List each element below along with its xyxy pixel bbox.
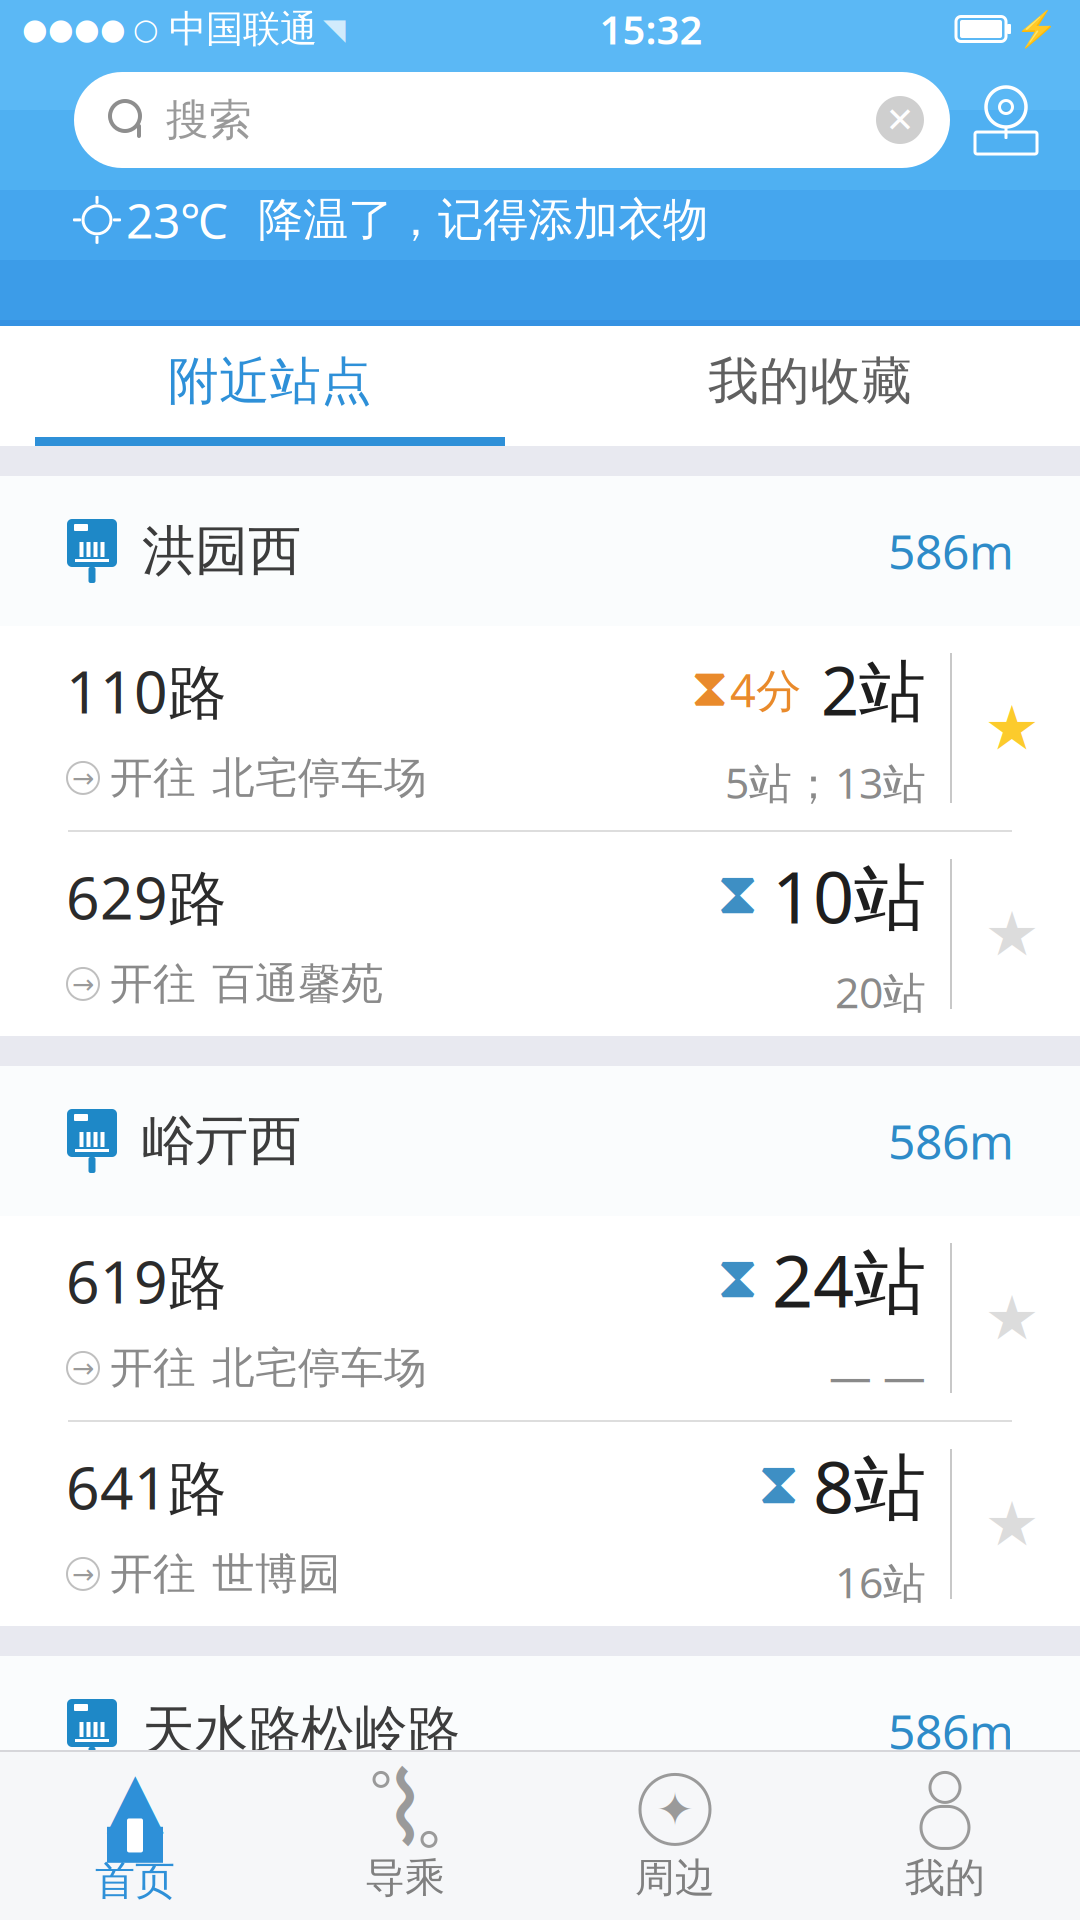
staticText: 附近站点 [168,350,372,413]
staticText: 百通馨苑 [212,958,384,1010]
staticText: ▲ [106,1756,163,1841]
staticText: 641路 [66,1448,227,1526]
staticText: 619路 [66,1242,227,1320]
staticText: ○ [133,12,159,46]
staticText: ✦ [656,1784,694,1835]
staticText: 天水路松岭路 [142,1698,460,1764]
staticText: 586m [888,1699,1014,1763]
staticText: 降温了，记得添加衣物 [258,192,708,248]
staticText: 开往 [110,1548,196,1600]
staticText: ◥ [323,12,346,46]
staticText: 110路 [66,652,227,730]
staticText: 洪园西 [142,518,301,584]
button[interactable]: 定位 [950,72,1062,168]
button[interactable]: 峪亓西 [0,1066,1080,1216]
staticText: ⧗ [691,664,728,716]
button[interactable]: 629路 [0,832,1080,1036]
staticText: ★ [984,1489,1039,1559]
staticText: ★ [984,693,1039,763]
staticText: → [72,763,94,793]
staticText: 我的 [905,1853,985,1902]
button[interactable]: 641路 [0,1422,1080,1626]
staticText: → [72,1559,94,1589]
button[interactable]: 我的 [810,1752,1080,1920]
button[interactable]: ✦ [540,1752,810,1920]
button[interactable]: 搜索 [74,72,950,168]
staticText: ⧗ [758,1457,799,1514]
staticText: ⚡ [1015,9,1058,49]
staticText: 4分 [730,660,801,720]
staticText: 2站 [821,645,926,734]
button[interactable]: ▲ [0,1752,270,1920]
staticText: ✕ [885,100,914,140]
button[interactable]: ⌇ [270,1752,540,1920]
staticText: 15:32 [599,2,702,55]
button[interactable]: 619路 [0,1216,1080,1420]
staticText: 首页 [95,1856,175,1905]
staticText: 峪亓西 [142,1108,301,1174]
staticText: → [72,969,94,999]
button[interactable]: 附近站点 [0,326,540,446]
button[interactable]: 110路 [0,626,1080,830]
staticText: — — [829,1347,926,1404]
button[interactable]: 我的收藏 [540,326,1080,446]
staticText: ★ [984,899,1039,969]
staticText: 10站 [772,848,926,943]
staticText: 周边 [635,1853,715,1902]
staticText: 世博园 [212,1548,341,1600]
staticText: 5站；13站 [725,754,926,811]
staticText: 8站 [813,1438,926,1533]
staticText: ⧗ [717,867,758,924]
button[interactable]: 洪园西 [0,476,1080,626]
staticText: 北宅停车场 [212,752,427,804]
staticText: 中国联通 [169,6,317,52]
staticText: 23℃ [126,188,228,252]
staticText: 开往 [110,1342,196,1394]
staticText: ★ [984,1283,1039,1353]
staticText: 开往 [110,752,196,804]
button[interactable]: 天水路松岭路 [0,1656,1080,1806]
staticText: ●●●● [22,12,126,46]
staticText: ⧗ [717,1251,758,1308]
staticText: ⌇ [381,1753,429,1865]
staticText: → [72,1353,94,1383]
staticText: 16站 [835,1553,926,1610]
staticText: 开往 [110,958,196,1010]
staticText: 我的收藏 [708,350,912,413]
staticText: 北宅停车场 [212,1342,427,1394]
staticText: 586m [888,519,1014,583]
staticText: 导乘 [365,1853,445,1902]
staticText: 20站 [835,963,926,1020]
staticText: 搜索 [166,94,252,146]
staticText: 24站 [772,1232,926,1327]
staticText: 586m [888,1109,1014,1173]
staticText: 629路 [66,858,227,936]
